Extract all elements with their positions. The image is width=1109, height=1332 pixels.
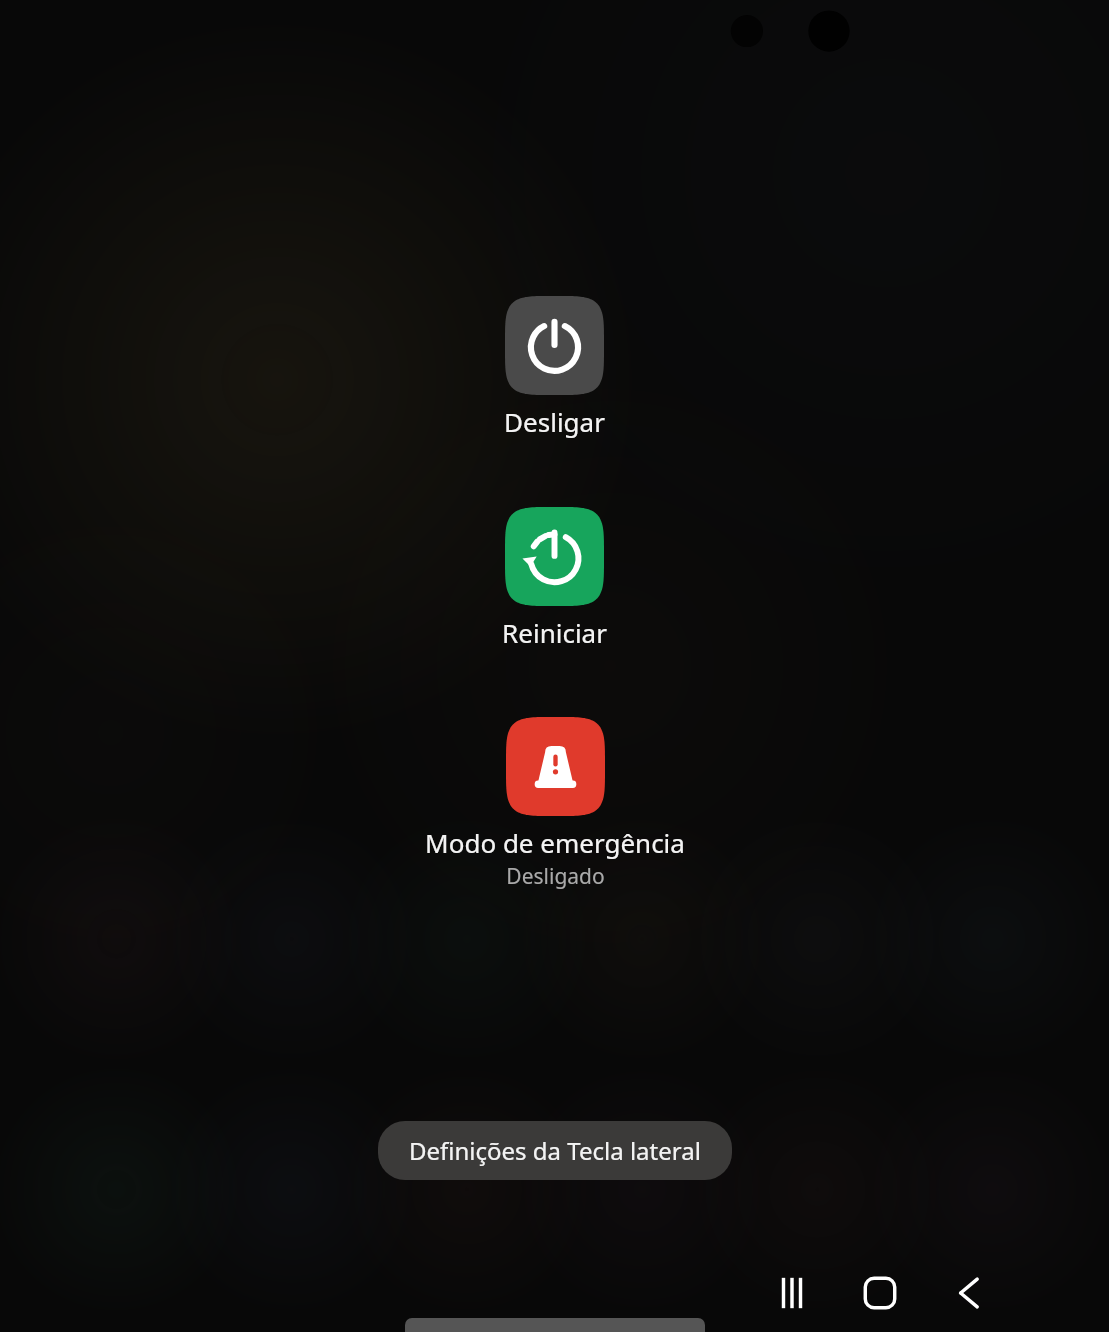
staticText: Definições da Tecla lateral xyxy=(409,1134,701,1167)
staticText: Desligar xyxy=(504,404,605,439)
button[interactable]: Reiniciar xyxy=(472,503,637,654)
staticText: Modo de emergência xyxy=(425,825,685,860)
button[interactable]: Definições da Tecla lateral xyxy=(378,1121,732,1180)
staticText: Desligado xyxy=(506,862,605,891)
button[interactable]: Recents xyxy=(748,1259,836,1327)
button[interactable]: Home xyxy=(836,1259,924,1327)
button[interactable]: Desligar xyxy=(474,292,635,443)
staticText: Reiniciar xyxy=(502,615,607,650)
button[interactable]: Back xyxy=(924,1259,1012,1327)
button[interactable]: Modo de emergência xyxy=(395,713,715,895)
